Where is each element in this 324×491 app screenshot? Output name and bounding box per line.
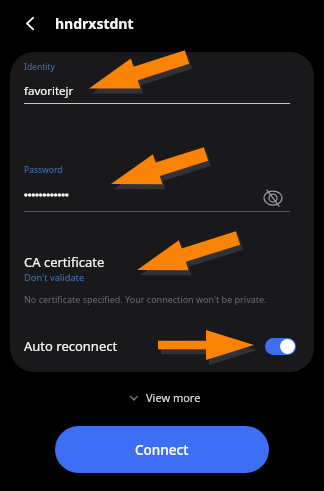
staticText: CA certificate — [24, 253, 105, 271]
button[interactable]: Back — [13, 6, 47, 40]
staticText: View more — [146, 390, 201, 405]
staticText: hndrxstdnt — [55, 14, 134, 33]
staticText: Don't validate — [24, 271, 85, 284]
staticText: No certificate specified. Your connectio… — [24, 293, 267, 305]
staticText: Connect — [135, 441, 189, 459]
staticText: Identity — [24, 61, 55, 73]
button[interactable]: Connect — [55, 426, 269, 473]
staticText: favoritejr — [24, 83, 74, 99]
staticText: Password — [24, 164, 63, 176]
button[interactable]: CA certificate — [10, 253, 314, 284]
button[interactable]: Show password — [259, 184, 287, 212]
button[interactable]: View more — [118, 385, 207, 410]
button[interactable]: Auto reconnect — [10, 333, 314, 359]
staticText: Auto reconnect — [24, 337, 118, 355]
